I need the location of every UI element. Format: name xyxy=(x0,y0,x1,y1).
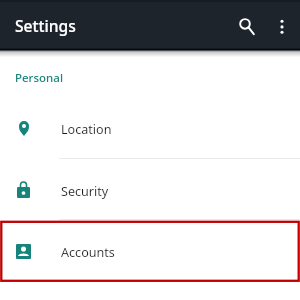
button[interactable]: Accounts xyxy=(0,219,300,281)
staticText: Security xyxy=(61,183,109,200)
staticText: Location xyxy=(61,121,112,138)
staticText: Accounts xyxy=(61,244,115,261)
staticText: Settings xyxy=(15,15,76,36)
button[interactable]: Location xyxy=(0,96,300,158)
button[interactable]: More options xyxy=(266,8,298,40)
button[interactable]: Search xyxy=(229,8,261,40)
staticText: Personal xyxy=(15,70,63,86)
button[interactable]: Security xyxy=(0,158,300,220)
